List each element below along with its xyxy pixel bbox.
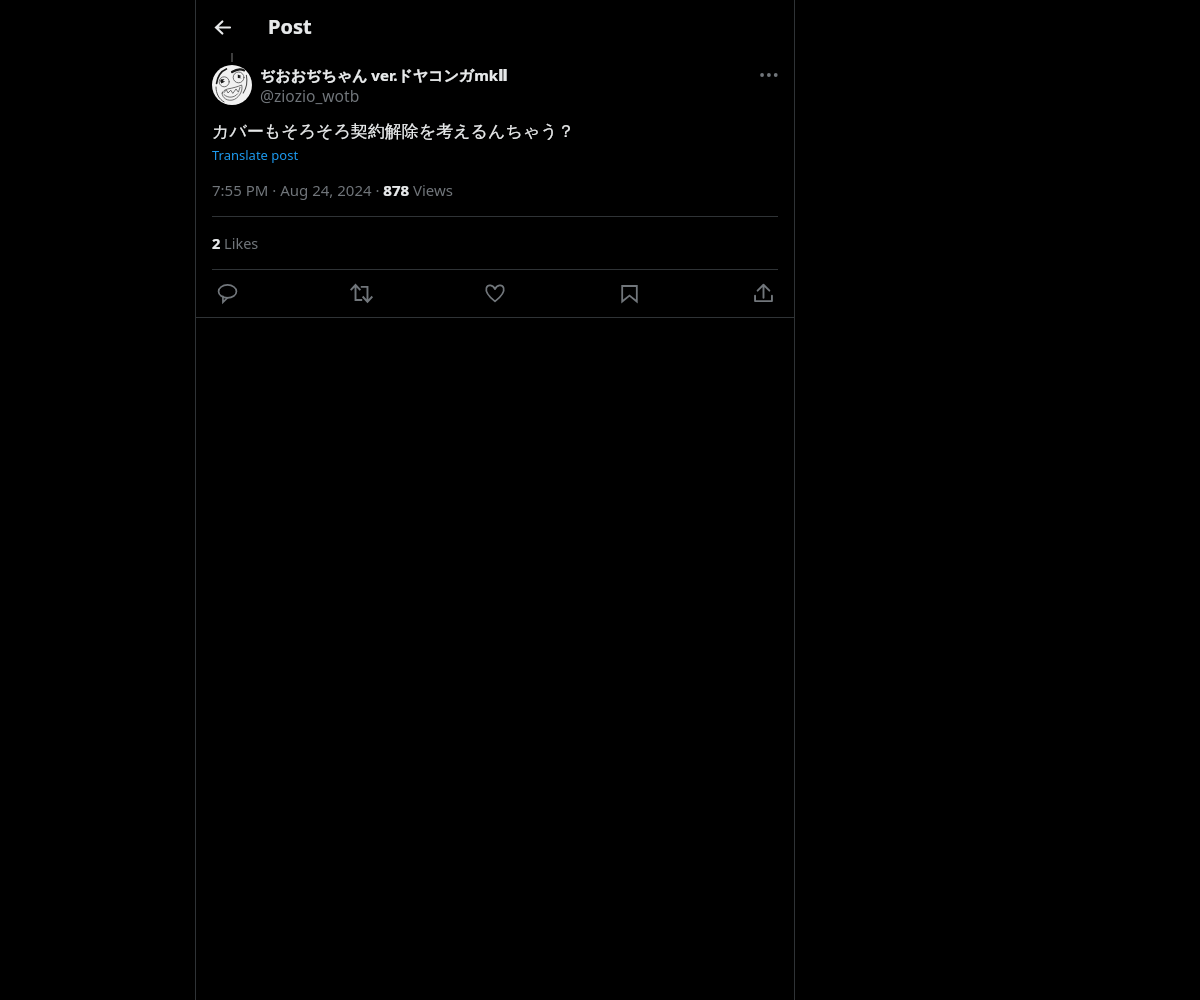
button[interactable]: Back [202, 7, 242, 47]
staticText: 2 Likes [212, 233, 259, 253]
staticText: @ziozio_wotb [260, 85, 360, 106]
staticText: ぢおおぢちゃん ver.ドヤコンガmkⅡ [260, 65, 508, 85]
button[interactable]: ぢおおぢちゃん ver.ドヤコンガmkⅡ [260, 64, 510, 106]
staticText: 7:55 PM · Aug 24, 2024 · 878 Views [212, 180, 454, 200]
button[interactable]: Repost [346, 278, 376, 308]
button[interactable] [212, 65, 252, 105]
staticText: Post [268, 13, 312, 40]
staticText: カバーもそろそろ契約解除を考えるんちゃう？ [212, 121, 575, 142]
button[interactable]: Reply [212, 278, 242, 308]
button[interactable]: Share [748, 278, 778, 308]
button[interactable]: Translate post [212, 146, 299, 164]
button[interactable]: More options [753, 60, 783, 90]
staticText: Translate post [212, 146, 299, 164]
button[interactable]: Bookmark [614, 278, 644, 308]
button[interactable]: Like [480, 278, 510, 308]
